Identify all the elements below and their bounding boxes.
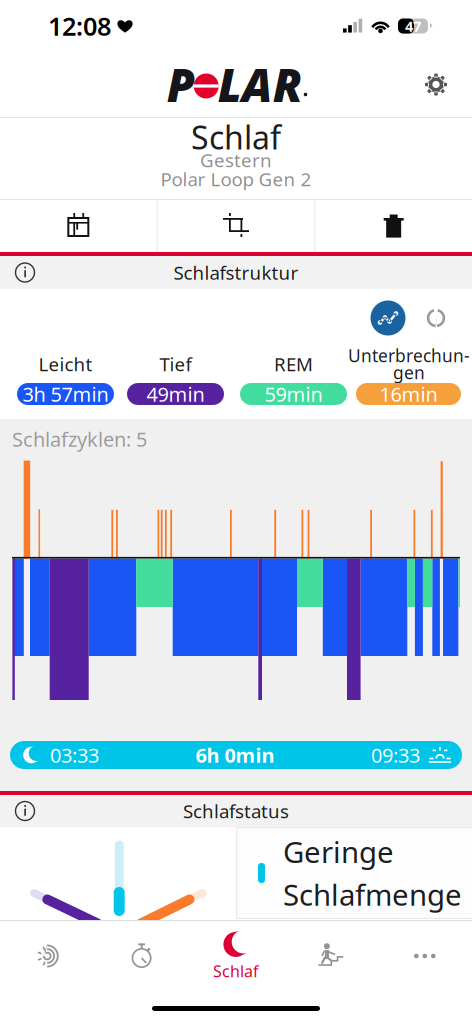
button[interactable]: More [378,927,472,985]
staticText: 3h 57min [22,381,108,407]
staticText: 03:33 [50,742,99,768]
staticText: Schlaf [213,960,259,982]
staticText: Geringe [283,832,394,871]
staticText: 49min [146,381,204,407]
staticText: Schlafstatus [183,799,289,823]
staticText: Unterbrechun- [348,344,470,367]
staticText: 16min [379,381,437,407]
staticText: P [167,54,195,115]
staticText: 6h 0min [195,742,274,768]
button[interactable]: Chart view [366,296,410,340]
button[interactable]: Steps [283,927,378,985]
staticText: Polar Loop Gen 2 [160,167,311,191]
button[interactable]: Info [8,256,42,289]
staticText: 59min [264,381,322,407]
button[interactable]: Calendar [0,200,157,252]
staticText: 47 [405,16,421,36]
button[interactable]: Settings [414,62,458,106]
staticText: Schlafstruktur [173,260,298,285]
staticText: Schlaf [191,116,281,158]
staticText: 09:33 [371,742,420,768]
staticText: LAR [218,54,302,115]
button[interactable]: Activity [0,927,94,985]
button[interactable]: Training [94,927,189,985]
staticText: Gestern [200,148,272,172]
button[interactable]: Delete [315,200,472,252]
staticText: 12:08 [48,9,111,43]
staticText: Schlafzyklen: 5 [12,426,147,452]
staticText: Tief [159,352,191,376]
staticText: Leicht [38,352,92,376]
staticText: Schlafmenge [283,875,462,914]
button[interactable]: Edit [158,200,314,252]
staticText: gen [393,361,425,384]
button[interactable]: Ring view [414,296,458,340]
staticText: REM [274,352,313,376]
button[interactable]: Sleep [189,927,283,985]
button[interactable]: Info [8,795,42,827]
